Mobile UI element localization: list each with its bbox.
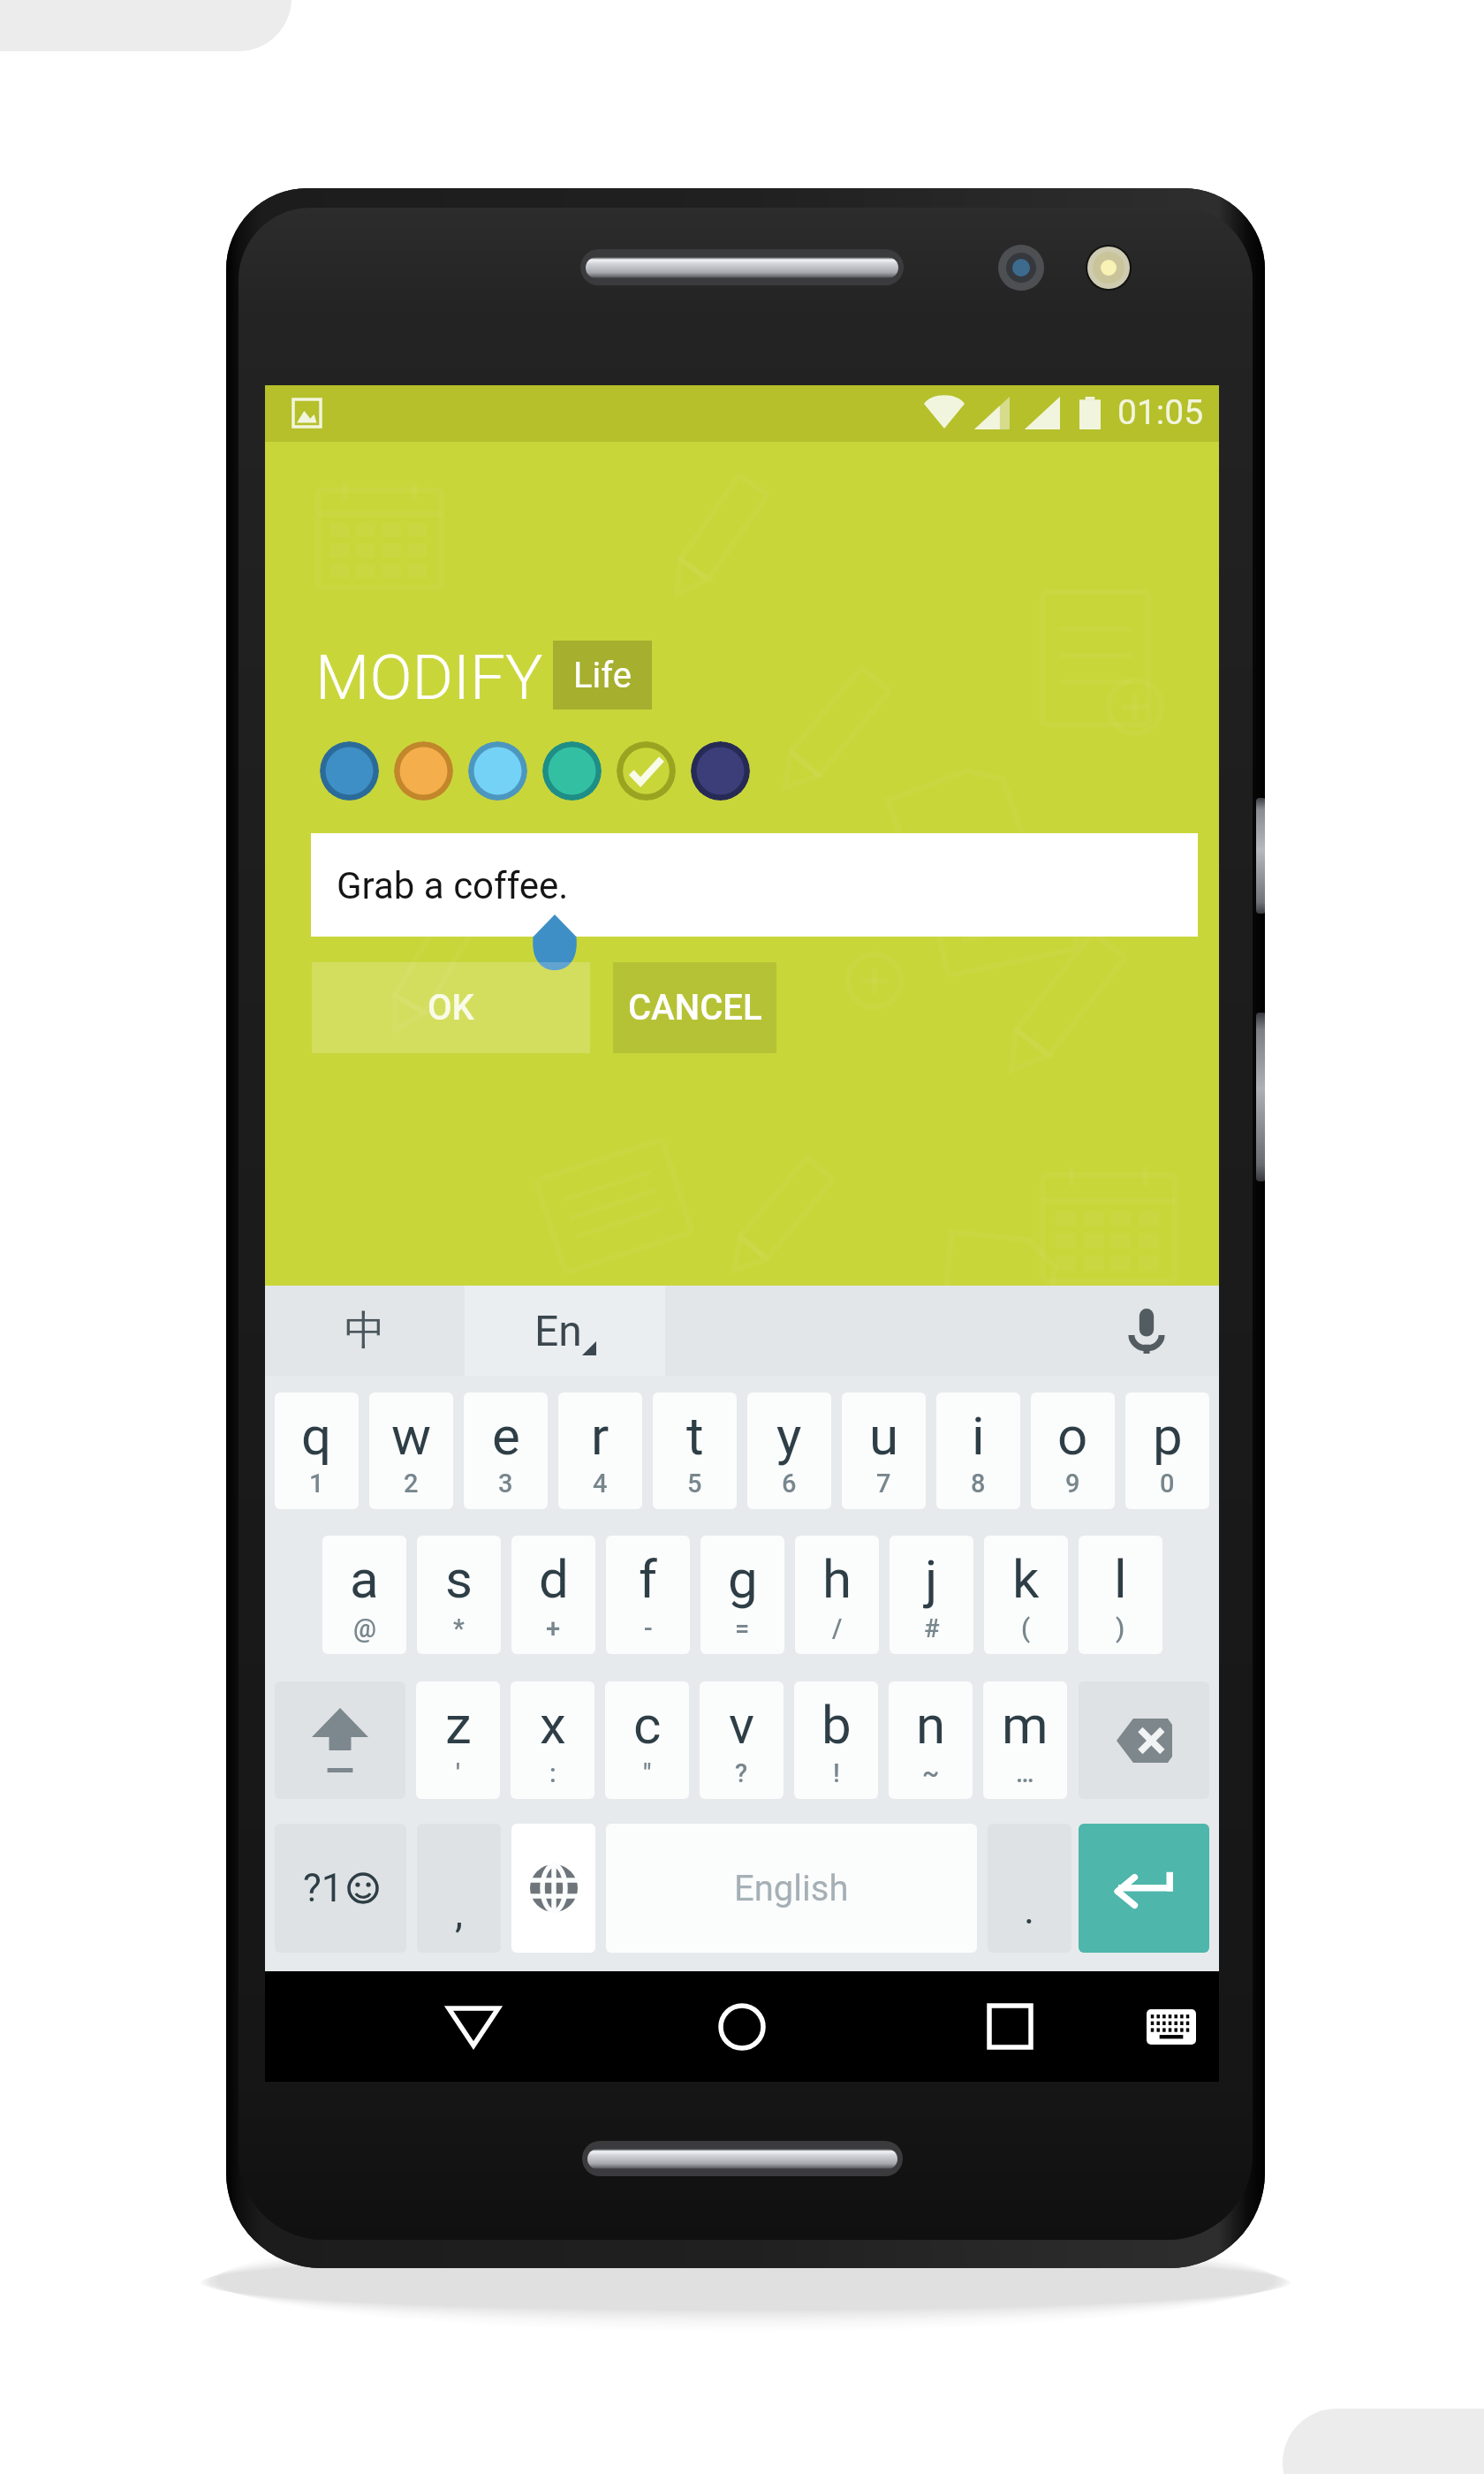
- button[interactable]: Home: [662, 1971, 821, 2082]
- button[interactable]: Recents: [930, 1971, 1089, 2082]
- staticText: MODIFY: [315, 641, 543, 714]
- staticText: 01:05: [1117, 392, 1204, 433]
- button[interactable]: Change language: [511, 1824, 595, 1953]
- staticText: m: [1002, 1694, 1049, 1756]
- staticText: Life: [573, 655, 632, 696]
- staticText: ?1: [303, 1865, 344, 1911]
- button[interactable]: Life: [553, 641, 652, 710]
- staticText: :: [549, 1758, 556, 1788]
- button[interactable]: w: [369, 1393, 453, 1509]
- staticText: n: [916, 1694, 946, 1756]
- staticText: s: [445, 1548, 473, 1610]
- staticText: v: [729, 1694, 755, 1756]
- button[interactable]: Chinese input: [265, 1286, 465, 1376]
- button[interactable]: a: [322, 1536, 406, 1654]
- staticText: CANCEL: [628, 987, 762, 1028]
- button[interactable]: h: [795, 1536, 879, 1654]
- button[interactable]: v: [700, 1681, 784, 1799]
- staticText: English: [734, 1868, 849, 1909]
- staticText: k: [1012, 1548, 1040, 1610]
- button[interactable]: p: [1125, 1393, 1209, 1509]
- button[interactable]: r: [558, 1393, 642, 1509]
- staticText: =: [735, 1613, 750, 1643]
- button[interactable]: Grab a coffee.: [311, 833, 1198, 937]
- button[interactable]: Back: [394, 1971, 553, 2082]
- staticText: p: [1153, 1405, 1183, 1467]
- button[interactable]: t: [653, 1393, 737, 1509]
- staticText: 6: [782, 1468, 797, 1499]
- button[interactable]: Voice input: [1098, 1286, 1195, 1376]
- button[interactable]: Colour 6: [691, 741, 750, 801]
- staticText: 中: [344, 1305, 385, 1356]
- button[interactable]: s: [417, 1536, 501, 1654]
- button[interactable]: Switch keyboard: [1118, 1971, 1219, 2082]
- staticText: OK: [428, 987, 474, 1028]
- staticText: y: [776, 1405, 802, 1467]
- staticText: t: [686, 1405, 704, 1467]
- button[interactable]: Backspace: [1079, 1681, 1209, 1799]
- staticText: d: [539, 1548, 569, 1610]
- staticText: e: [492, 1405, 520, 1467]
- staticText: o: [1057, 1405, 1088, 1467]
- staticText: w: [391, 1405, 432, 1467]
- button[interactable]: k: [984, 1536, 1068, 1654]
- button[interactable]: Shift: [275, 1681, 405, 1799]
- staticText: /: [832, 1613, 843, 1643]
- staticText: ': [456, 1758, 460, 1788]
- button[interactable]: Enter: [1079, 1824, 1209, 1953]
- staticText: z: [445, 1694, 472, 1756]
- button[interactable]: j: [890, 1536, 973, 1654]
- staticText: @: [353, 1613, 376, 1643]
- staticText: 4: [593, 1468, 608, 1499]
- staticText: 9: [1065, 1468, 1080, 1499]
- staticText: 0: [1160, 1468, 1175, 1499]
- button[interactable]: Symbols: [275, 1824, 406, 1953]
- button[interactable]: i: [936, 1393, 1020, 1509]
- staticText: 8: [971, 1468, 986, 1499]
- button[interactable]: Colour 5: [617, 741, 676, 801]
- button[interactable]: Comma: [417, 1824, 501, 1953]
- staticText: ,: [455, 1889, 464, 1937]
- button[interactable]: e: [464, 1393, 548, 1509]
- button[interactable]: English input: [465, 1286, 665, 1376]
- staticText: c: [633, 1694, 662, 1756]
- button[interactable]: Colour 4: [542, 741, 602, 801]
- button[interactable]: c: [605, 1681, 689, 1799]
- staticText: 2: [404, 1468, 419, 1499]
- button[interactable]: g: [700, 1536, 784, 1654]
- button[interactable]: Colour 1: [320, 741, 379, 801]
- button[interactable]: Colour 2: [394, 741, 453, 801]
- button[interactable]: x: [511, 1681, 594, 1799]
- staticText: ?: [735, 1758, 748, 1788]
- staticText: i: [972, 1405, 985, 1467]
- button[interactable]: l: [1079, 1536, 1162, 1654]
- button[interactable]: u: [842, 1393, 926, 1509]
- staticText: ": [643, 1758, 652, 1788]
- button[interactable]: z: [416, 1681, 500, 1799]
- staticText: ): [1116, 1613, 1125, 1643]
- button[interactable]: d: [511, 1536, 595, 1654]
- button[interactable]: b: [794, 1681, 878, 1799]
- button[interactable]: English: [606, 1824, 977, 1953]
- button[interactable]: o: [1031, 1393, 1115, 1509]
- button[interactable]: y: [747, 1393, 831, 1509]
- staticText: +: [546, 1613, 561, 1643]
- staticText: 5: [687, 1468, 702, 1499]
- staticText: (: [1021, 1613, 1031, 1643]
- button[interactable]: f: [606, 1536, 690, 1654]
- button[interactable]: m: [983, 1681, 1067, 1799]
- staticText: Grab a coffee.: [337, 864, 569, 907]
- staticText: ~: [922, 1758, 940, 1788]
- staticText: #: [924, 1613, 940, 1643]
- button[interactable]: CANCEL: [613, 962, 776, 1053]
- button[interactable]: Period: [988, 1824, 1071, 1953]
- button[interactable]: Colour 3: [468, 741, 527, 801]
- button[interactable]: OK: [312, 962, 590, 1053]
- staticText: q: [301, 1405, 332, 1467]
- staticText: b: [821, 1694, 852, 1756]
- button[interactable]: q: [275, 1393, 359, 1509]
- staticText: r: [591, 1405, 609, 1467]
- staticText: 1: [309, 1468, 324, 1499]
- button[interactable]: n: [889, 1681, 973, 1799]
- staticText: 7: [876, 1468, 891, 1499]
